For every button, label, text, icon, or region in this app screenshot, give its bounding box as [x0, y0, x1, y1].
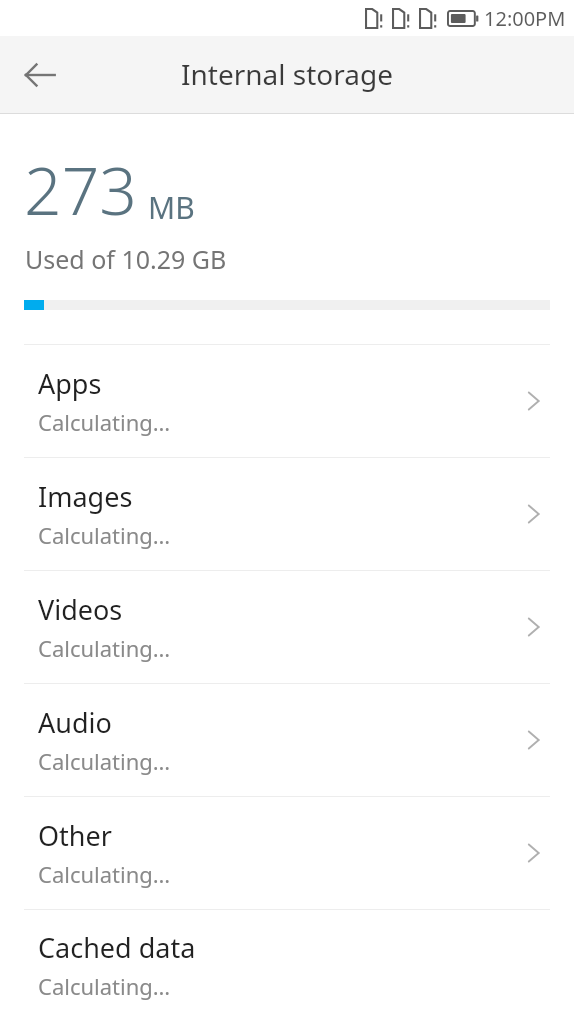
staticText: Apps — [38, 365, 102, 402]
button[interactable]: Other — [0, 797, 574, 909]
button[interactable]: Audio — [0, 684, 574, 796]
staticText: Other — [38, 817, 112, 854]
staticText: Images — [38, 478, 133, 515]
staticText: Cached data — [38, 929, 196, 966]
button[interactable]: Images — [0, 458, 574, 570]
staticText: Calculating… — [38, 859, 171, 889]
staticText: Internal storage — [181, 55, 393, 93]
staticText: 273 — [24, 144, 138, 234]
staticText: Used of 10.29 GB — [25, 242, 227, 276]
button[interactable]: Back — [14, 49, 66, 101]
staticText: Calculating… — [38, 746, 171, 776]
button[interactable]: Cached data — [0, 910, 574, 1020]
staticText: MB — [148, 187, 195, 228]
button[interactable]: Apps — [0, 345, 574, 457]
button[interactable]: Videos — [0, 571, 574, 683]
staticText: Calculating… — [38, 971, 171, 1001]
staticText: Calculating… — [38, 407, 171, 437]
staticText: 12:00PM — [484, 5, 566, 32]
staticText: Videos — [38, 591, 123, 628]
staticText: Calculating… — [38, 520, 171, 550]
staticText: Audio — [38, 704, 112, 741]
staticText: Calculating… — [38, 633, 171, 663]
